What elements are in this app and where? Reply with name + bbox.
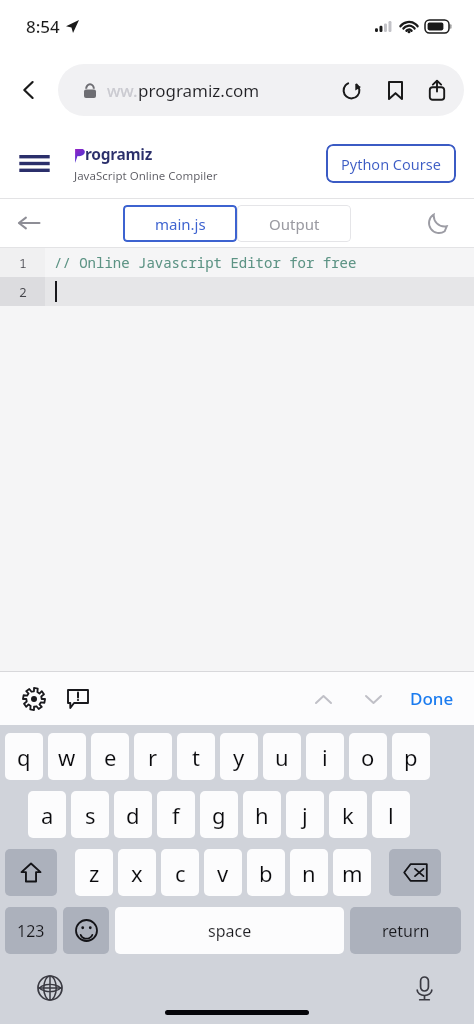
staticText: o xyxy=(361,742,375,772)
staticText: Done xyxy=(410,687,454,710)
button[interactable]: d xyxy=(114,791,152,838)
button[interactable]: Dark mode xyxy=(418,202,460,244)
button[interactable]: return xyxy=(350,907,461,954)
button[interactable]: a xyxy=(28,791,66,838)
button[interactable]: Done xyxy=(404,679,460,718)
button[interactable]: g xyxy=(200,791,238,838)
button[interactable]: ww. xyxy=(58,64,464,116)
button[interactable]: x xyxy=(118,849,156,896)
staticText: space xyxy=(208,920,252,942)
button[interactable]: j xyxy=(286,791,324,838)
staticText: 2 xyxy=(19,283,27,301)
staticText: programiz.com xyxy=(138,79,260,102)
button[interactable]: Backspace xyxy=(389,849,441,896)
staticText: i xyxy=(322,742,328,772)
button[interactable]: z xyxy=(75,849,113,896)
staticText: h xyxy=(255,800,269,830)
staticText: q xyxy=(17,742,31,772)
staticText: JavaScript Online Compiler xyxy=(74,168,218,184)
button[interactable]: Back xyxy=(6,67,52,113)
staticText: d xyxy=(126,800,140,830)
button[interactable]: q xyxy=(5,733,43,780)
staticText: u xyxy=(275,742,289,772)
button[interactable]: l xyxy=(372,791,410,838)
staticText: n xyxy=(302,858,316,888)
staticText: 8:54 xyxy=(26,15,60,38)
button[interactable]: k xyxy=(329,791,367,838)
button[interactable]: Output xyxy=(237,205,351,242)
button[interactable]: s xyxy=(71,791,109,838)
button[interactable]: o xyxy=(349,733,387,780)
staticText: 123 xyxy=(17,920,45,942)
button[interactable]: Python Course xyxy=(326,144,456,183)
staticText: s xyxy=(85,800,96,830)
staticText: // Online Javascript Editor for free xyxy=(54,253,357,272)
staticText: ww. xyxy=(107,79,138,102)
button[interactable]: c xyxy=(161,849,199,896)
button[interactable]: h xyxy=(243,791,281,838)
button[interactable]: Dictation xyxy=(404,968,444,1008)
staticText: c xyxy=(175,858,186,888)
staticText: Output xyxy=(269,214,320,234)
staticText: l xyxy=(388,800,394,830)
button[interactable]: f xyxy=(157,791,195,838)
staticText: g xyxy=(212,800,226,830)
staticText: return xyxy=(382,920,430,942)
button[interactable]: Emoji xyxy=(63,907,109,954)
staticText: r xyxy=(148,742,158,772)
staticText: m xyxy=(342,858,363,888)
button[interactable]: 123 xyxy=(5,907,57,954)
staticText: x xyxy=(131,858,143,888)
button[interactable]: Settings xyxy=(17,682,51,716)
staticText: a xyxy=(41,800,54,830)
button[interactable]: i xyxy=(306,733,344,780)
staticText: w xyxy=(58,742,76,772)
button[interactable]: y xyxy=(220,733,258,780)
staticText: t xyxy=(192,742,200,772)
staticText: f xyxy=(172,800,180,830)
button[interactable]: Back xyxy=(8,202,50,244)
button[interactable]: space xyxy=(115,907,344,954)
staticText: e xyxy=(104,742,117,772)
button[interactable]: Bookmark xyxy=(376,71,414,109)
button[interactable]: t xyxy=(177,733,215,780)
button[interactable]: Next keyboard xyxy=(30,968,70,1008)
button[interactable]: Share xyxy=(418,71,456,109)
button[interactable]: m xyxy=(333,849,371,896)
staticText: Python Course xyxy=(341,154,441,174)
button[interactable]: main.js xyxy=(123,205,237,242)
button[interactable]: p xyxy=(392,733,430,780)
button[interactable]: Shift xyxy=(5,849,57,896)
staticText: rogramiz xyxy=(85,143,152,164)
staticText: p xyxy=(404,742,418,772)
button[interactable]: e xyxy=(91,733,129,780)
button[interactable]: u xyxy=(263,733,301,780)
button[interactable]: Menu xyxy=(11,140,57,186)
button[interactable]: Next field xyxy=(354,680,392,718)
staticText: b xyxy=(259,858,273,888)
button[interactable]: Report issue xyxy=(61,682,95,716)
staticText: v xyxy=(217,858,229,888)
button[interactable]: Reload xyxy=(332,71,370,109)
staticText: main.js xyxy=(155,214,206,234)
staticText: y xyxy=(233,742,245,772)
button[interactable]: w xyxy=(48,733,86,780)
button[interactable]: Previous field xyxy=(304,680,342,718)
button[interactable]: v xyxy=(204,849,242,896)
staticText: j xyxy=(302,800,308,830)
button[interactable]: b xyxy=(247,849,285,896)
staticText: 1 xyxy=(19,254,27,272)
staticText: z xyxy=(89,858,100,888)
button[interactable]: r xyxy=(134,733,172,780)
staticText: k xyxy=(342,800,354,830)
button[interactable]: n xyxy=(290,849,328,896)
